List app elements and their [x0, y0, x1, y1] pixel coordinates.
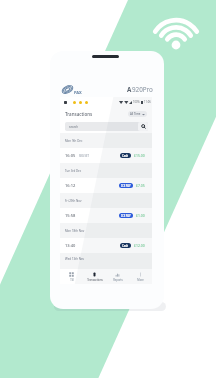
staticText: SKG SET: [79, 154, 89, 158]
staticText: 16:12: [65, 183, 76, 188]
button[interactable]: 15:58: [60, 208, 152, 223]
staticText: All Time: [130, 112, 141, 116]
staticText: £7.05: [136, 183, 145, 188]
staticText: Transactions: [65, 111, 93, 117]
staticText: Mon 18th Nov: [65, 229, 85, 233]
button[interactable]: 16:05: [60, 148, 152, 163]
staticText: Cash: [122, 154, 129, 158]
staticText: Wed 13th Nov: [65, 257, 85, 261]
staticText: £15.00: [134, 153, 145, 158]
staticText: Till: [70, 278, 74, 282]
staticText: Fri 29th Nov: [65, 199, 82, 203]
button[interactable]: More: [129, 269, 152, 284]
button[interactable]: 16:12: [60, 178, 152, 193]
staticText: 13:40: [65, 243, 76, 248]
staticText: Transactions: [87, 278, 103, 282]
staticText: £1.00: [136, 213, 145, 218]
staticText: PAX: [74, 90, 82, 95]
staticText: Mon 9th Dec: [65, 139, 83, 143]
staticText: Reports: [113, 278, 123, 282]
staticText: 11:06: [144, 100, 151, 104]
staticText: 16:05: [65, 153, 76, 158]
staticText: ICE PAY: [121, 214, 131, 218]
staticText: Tue 3rd Dec: [65, 169, 82, 173]
other: Search: [138, 122, 148, 131]
button[interactable]: Transactions: [83, 269, 106, 284]
staticText: More: [137, 278, 144, 282]
staticText: A: [127, 85, 132, 94]
staticText: ICE PAY: [121, 184, 131, 188]
button[interactable]: Till: [60, 269, 83, 284]
staticText: search: [69, 125, 78, 129]
button[interactable]: 13:40: [60, 238, 152, 253]
staticText: £12.00: [134, 243, 145, 248]
other: Wi-Fi: [148, 14, 204, 50]
button[interactable]: Reports: [106, 269, 129, 284]
staticText: 100%: [133, 100, 140, 104]
button[interactable]: search: [65, 122, 148, 131]
staticText: 920Pro: [132, 85, 153, 94]
staticText: Cash: [122, 244, 129, 248]
button[interactable]: All Time: [128, 111, 147, 117]
staticText: 15:58: [65, 213, 76, 218]
